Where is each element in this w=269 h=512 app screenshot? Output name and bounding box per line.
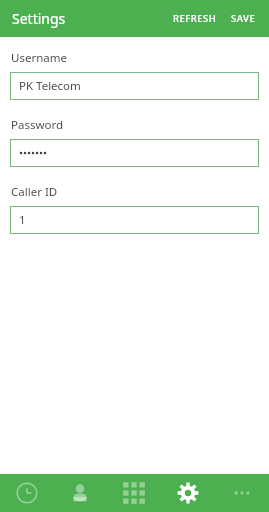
button[interactable]: PK Telecom xyxy=(10,72,259,100)
button[interactable]: More options xyxy=(215,474,269,512)
staticText: Password xyxy=(11,117,64,133)
staticText: Caller ID xyxy=(11,184,58,200)
staticText: SAVE xyxy=(231,12,256,25)
button[interactable]: 1 xyxy=(10,206,259,234)
staticText: Settings xyxy=(12,9,66,28)
staticText: 1 xyxy=(19,212,26,228)
button[interactable]: SAVE xyxy=(226,8,261,29)
button[interactable]: Dialpad xyxy=(107,474,161,512)
button[interactable]: Settings xyxy=(161,474,215,512)
button[interactable]: Recent calls xyxy=(0,474,53,512)
staticText: Username xyxy=(11,50,67,66)
button[interactable] xyxy=(10,139,259,167)
button[interactable]: REFRESH xyxy=(168,8,222,29)
staticText: PK Telecom xyxy=(19,78,81,94)
button[interactable]: Contacts xyxy=(53,474,107,512)
staticText: REFRESH xyxy=(173,12,217,25)
